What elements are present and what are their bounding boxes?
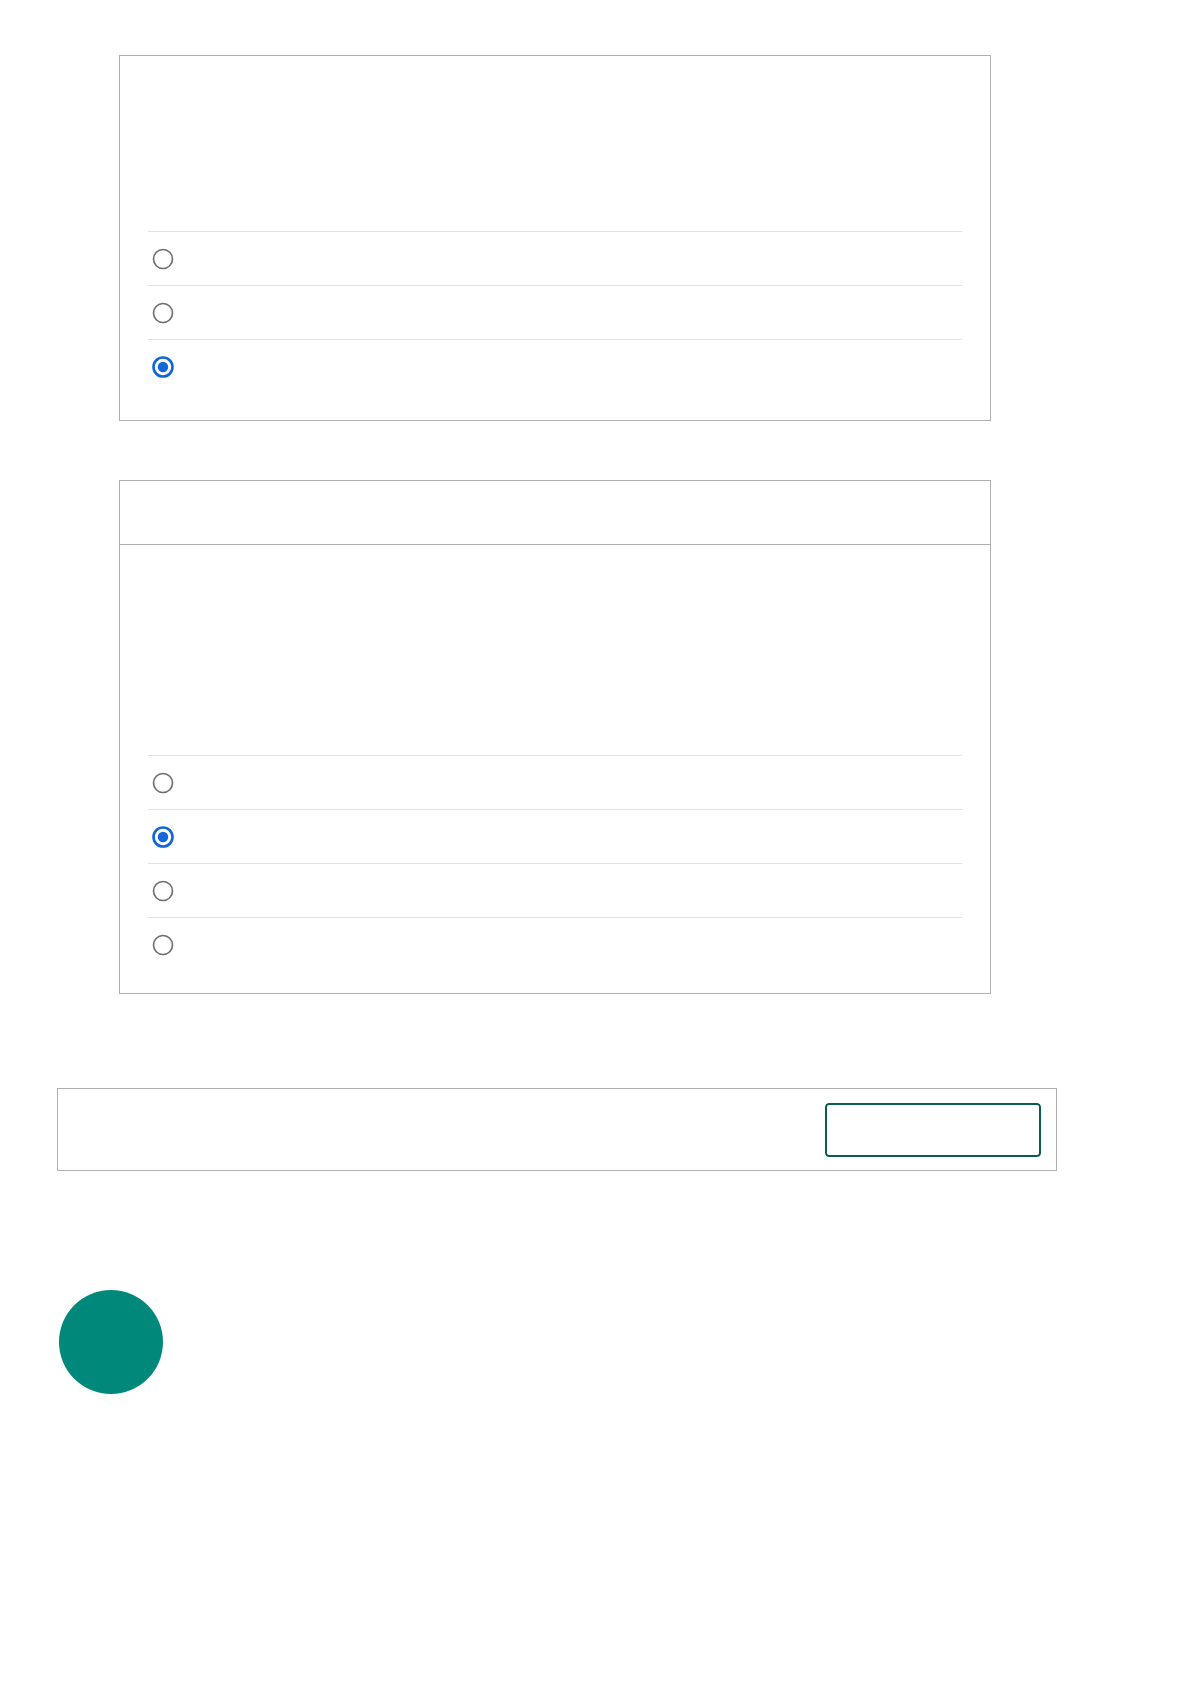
button[interactable]: Option (119, 340, 991, 393)
button[interactable]: Option (119, 756, 991, 809)
button[interactable]: Option (119, 918, 991, 971)
button[interactable]: Option (119, 810, 991, 863)
button[interactable]: Option (119, 286, 991, 339)
button[interactable]: Add (59, 1290, 163, 1394)
button[interactable]: Option (119, 864, 991, 917)
button[interactable]: Submit (825, 1103, 1041, 1157)
button[interactable]: Option (119, 232, 991, 285)
